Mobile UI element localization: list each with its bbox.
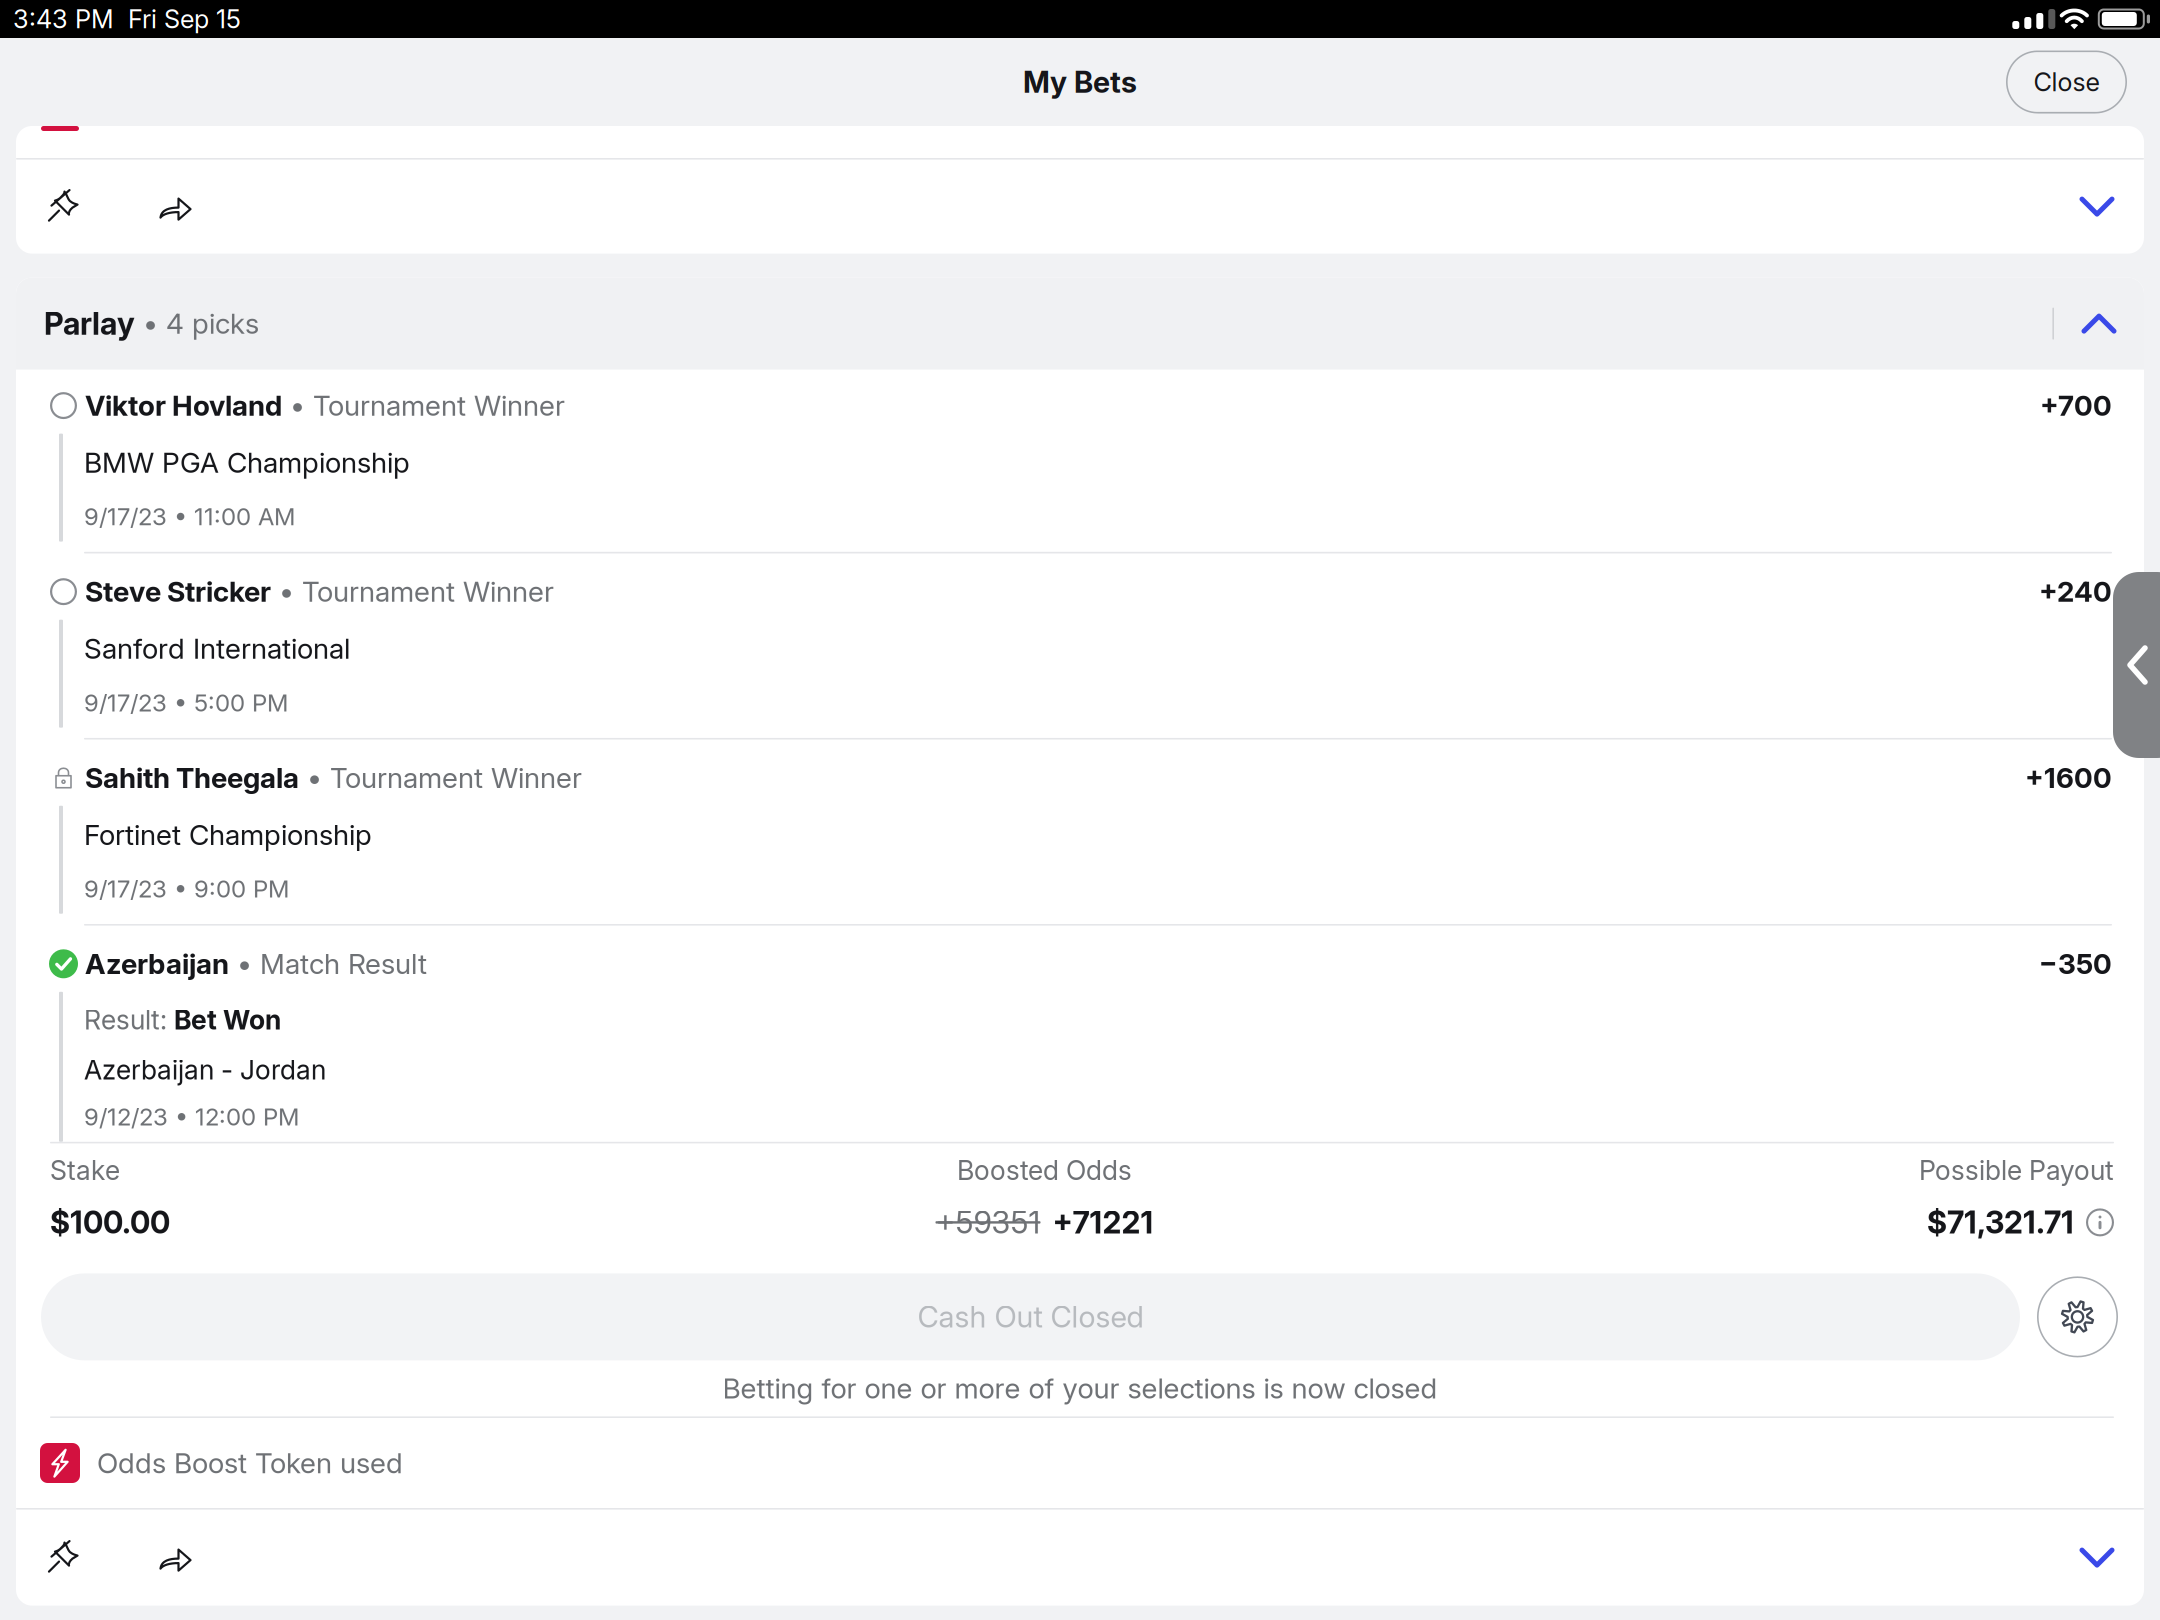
button[interactable]: Expand bet: [2050, 1510, 2144, 1606]
staticText: 3:43 PM: [13, 4, 114, 34]
staticText: My Bets: [1023, 64, 1137, 100]
staticText: •: [271, 575, 302, 609]
button[interactable]: Share bet: [110, 1510, 241, 1606]
staticText: Fri Sep 15: [128, 4, 241, 34]
staticText: Cash Out Closed: [917, 1299, 1143, 1335]
staticText: Tournament Winner: [313, 389, 565, 423]
staticText: Steve Stricker: [85, 575, 271, 609]
staticText: +240: [2039, 575, 2112, 609]
staticText: $100.00: [50, 1204, 170, 1241]
staticText: +59351: [935, 1204, 1040, 1241]
staticText: +700: [2040, 389, 2112, 423]
button[interactable]: Pin bet: [16, 160, 110, 254]
staticText: Tournament Winner: [330, 761, 582, 795]
staticText: Betting for one or more of your selectio…: [722, 1371, 1437, 1405]
staticText: Azerbaijan - Jordan: [84, 1054, 326, 1086]
staticText: $71,321.71: [1927, 1204, 2074, 1241]
staticText: Viktor Hovland: [85, 389, 282, 423]
staticText: Match Result: [260, 947, 427, 981]
staticText: Result:: [84, 1004, 174, 1036]
staticText: [77, 956, 85, 972]
staticText: Parlay: [44, 305, 135, 342]
staticText: Stake: [50, 1154, 120, 1187]
staticText: [1040, 1209, 1052, 1235]
staticText: −350: [2039, 947, 2112, 981]
staticText: •: [282, 389, 313, 423]
staticText: Fortinet Championship: [84, 818, 372, 852]
staticText: 9/17/23 • 5:00 PM: [84, 688, 288, 717]
staticText: Close: [2033, 67, 2099, 97]
staticText: Sahith Theegala: [85, 761, 299, 795]
staticText: 9/17/23 • 11:00 AM: [84, 502, 295, 531]
button[interactable]: Share bet: [110, 160, 241, 254]
staticText: 9/17/23 • 9:00 PM: [84, 874, 289, 903]
button[interactable]: Expand bet: [2050, 160, 2144, 254]
staticText: +71221: [1052, 1204, 1153, 1241]
staticText: Tournament Winner: [302, 575, 554, 609]
staticText: 4 picks: [166, 307, 259, 341]
staticText: Possible Payout: [1919, 1154, 2114, 1187]
button[interactable]: Pin bet: [16, 1510, 110, 1606]
staticText: Odds Boost Token used: [97, 1446, 403, 1480]
staticText: Azerbaijan: [85, 947, 229, 981]
button[interactable]: Bet settings: [2037, 1276, 2118, 1357]
staticText: +1600: [2025, 761, 2112, 795]
button[interactable]: Close: [2006, 50, 2127, 113]
staticText: Boosted Odds: [957, 1154, 1132, 1187]
staticText: Sanford International: [84, 632, 350, 666]
staticText: •: [229, 947, 260, 981]
staticText: •: [135, 307, 166, 341]
staticText: BMW PGA Championship: [84, 446, 410, 480]
staticText: 9/12/23 • 12:00 PM: [84, 1102, 299, 1131]
staticText: •: [299, 761, 330, 795]
button[interactable]: Open panel: [2113, 572, 2160, 758]
staticText: Bet Won: [174, 1004, 281, 1036]
button[interactable]: Parlay: [16, 278, 2144, 370]
button[interactable]: Cash Out Closed: [41, 1273, 2020, 1360]
